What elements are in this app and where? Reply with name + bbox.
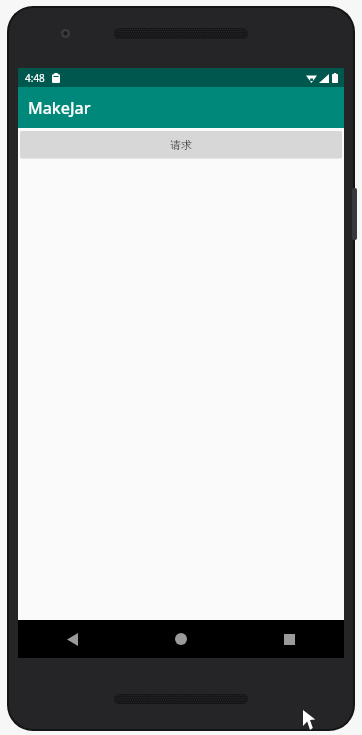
staticText: MakeJar [28, 97, 91, 119]
button[interactable]: Back [18, 620, 126, 658]
button[interactable]: Home [126, 620, 235, 658]
staticText: 请求 [170, 138, 192, 152]
button[interactable]: 请求 [20, 131, 342, 158]
staticText: 4:48 [25, 71, 45, 85]
button[interactable]: Recent apps [235, 620, 344, 658]
